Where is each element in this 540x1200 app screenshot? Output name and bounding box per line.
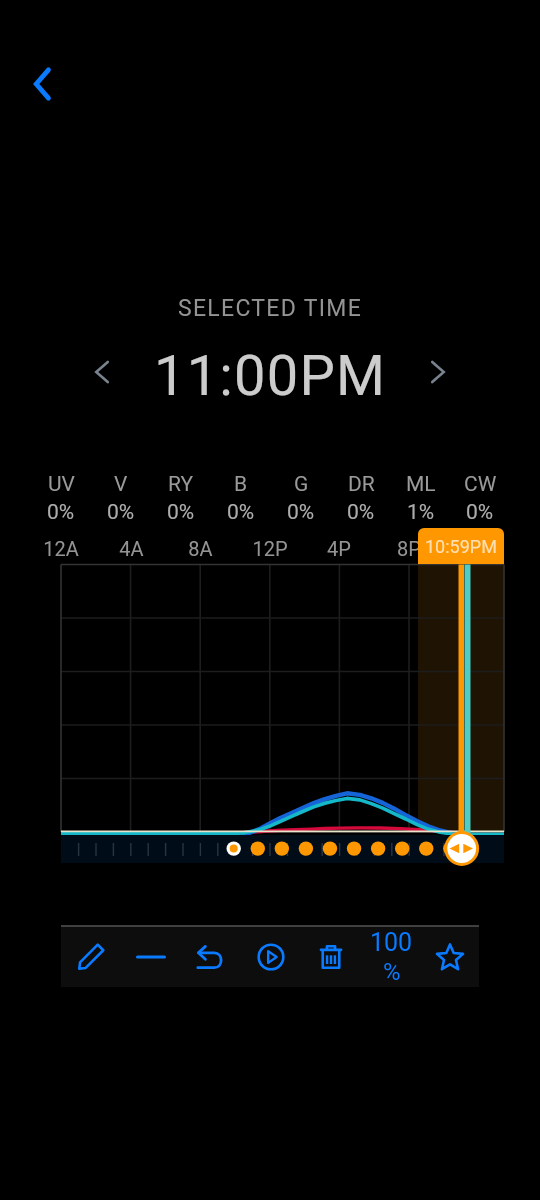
button[interactable]: Next hour xyxy=(416,350,460,394)
button[interactable]: Edit xyxy=(61,926,121,987)
button[interactable]: CW xyxy=(451,472,509,525)
staticText: 4P xyxy=(327,537,351,560)
staticText: UV xyxy=(48,472,75,497)
staticText: 0% xyxy=(466,500,494,525)
button[interactable]: ML xyxy=(391,472,451,525)
staticText: V xyxy=(114,472,128,497)
staticText: 12P xyxy=(252,537,288,560)
staticText: 1% xyxy=(407,500,435,525)
staticText: 12A xyxy=(43,537,79,560)
staticText: 8P xyxy=(397,537,421,560)
staticText: CW xyxy=(464,472,497,497)
staticText: 0% xyxy=(47,500,75,525)
button[interactable]: G xyxy=(271,472,331,525)
staticText: DR xyxy=(348,472,375,497)
staticText: RY xyxy=(168,472,194,497)
button[interactable]: Play xyxy=(241,926,301,987)
staticText: % xyxy=(383,958,401,986)
button[interactable]: Favorite xyxy=(421,926,479,987)
staticText: G xyxy=(294,472,309,497)
staticText: 0% xyxy=(287,500,315,525)
staticText: 0% xyxy=(227,500,255,525)
staticText: 11:00PM xyxy=(154,343,387,409)
staticText: 10:59PM xyxy=(425,536,497,557)
staticText: 0% xyxy=(167,500,195,525)
staticText: 100 xyxy=(370,928,413,957)
staticText: B xyxy=(234,472,248,497)
button[interactable]: B xyxy=(211,472,271,525)
button[interactable]: DR xyxy=(331,472,391,525)
staticText: SELECTED TIME xyxy=(178,295,363,322)
button[interactable]: 10:59PM xyxy=(418,528,504,564)
staticText: 0% xyxy=(347,500,375,525)
staticText: 8A xyxy=(188,537,213,560)
button[interactable]: UV xyxy=(31,472,91,525)
staticText: ML xyxy=(406,472,436,497)
button[interactable]: Delete xyxy=(301,926,361,987)
button[interactable]: V xyxy=(91,472,151,525)
staticText: 4A xyxy=(119,537,144,560)
button[interactable]: Decrease xyxy=(121,926,181,987)
button[interactable]: Back xyxy=(14,56,70,112)
button[interactable]: RY xyxy=(151,472,211,525)
button[interactable]: Brightness 100 percent xyxy=(361,926,421,987)
staticText: 0% xyxy=(107,500,135,525)
button[interactable]: Undo xyxy=(181,926,241,987)
button[interactable]: Previous hour xyxy=(80,350,124,394)
